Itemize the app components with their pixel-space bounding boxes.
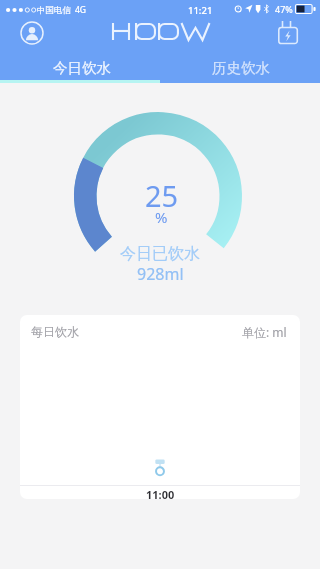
button[interactable]: 历史饮水 [160,55,320,83]
button[interactable]: 今日饮水 [0,55,160,83]
staticText: 25 [145,176,179,215]
staticText: % [155,207,168,227]
button[interactable]: Device battery [278,21,300,43]
staticText: 今日饮水 [53,59,111,77]
staticText: 11:00 [146,487,175,499]
staticText: 今日已饮水 [120,244,200,264]
button[interactable]: Account [20,21,44,45]
staticText: 4G [75,4,87,16]
staticText: 中国电信 [37,5,71,16]
staticText: 每日饮水 [31,324,79,339]
staticText: 单位: ml [242,324,287,340]
staticText: 928ml [137,263,184,285]
staticText: 11:21 [188,4,213,17]
staticText: 47% [275,3,293,15]
staticText: 历史饮水 [212,59,270,77]
